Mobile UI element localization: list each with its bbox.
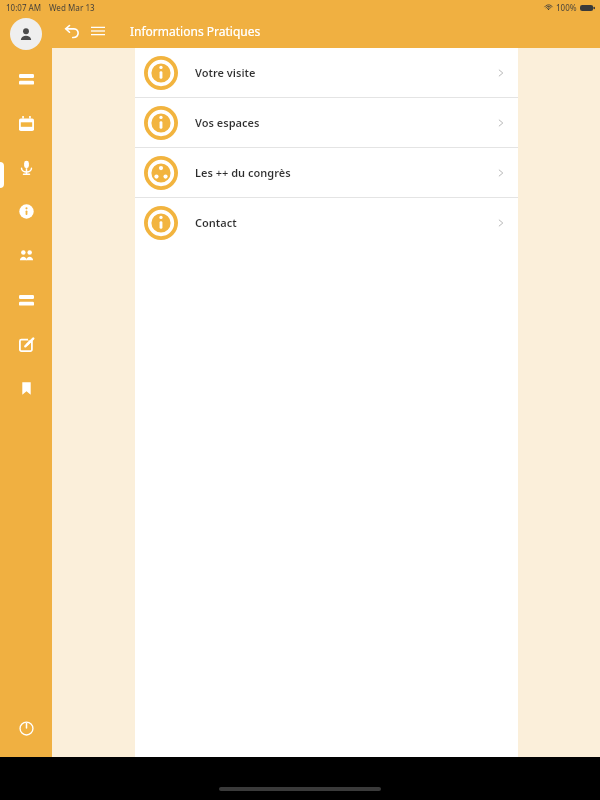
- staticText: Vos espaces: [195, 115, 260, 130]
- button[interactable]: Contact: [135, 198, 518, 247]
- staticText: Wed Mar 13: [49, 2, 95, 13]
- button[interactable]: Notes: [12, 330, 40, 358]
- button[interactable]: Logout: [11, 713, 41, 743]
- button[interactable]: List: [12, 65, 40, 93]
- button[interactable]: Votre visite: [135, 48, 518, 97]
- button[interactable]: Vos espaces: [135, 98, 518, 147]
- staticText: Les ++ du congrès: [195, 165, 291, 180]
- button[interactable]: Menu: [86, 19, 110, 43]
- button[interactable]: Calendar: [12, 109, 40, 137]
- button[interactable]: Back: [60, 19, 84, 43]
- button[interactable]: Agenda: [12, 286, 40, 314]
- button[interactable]: Les ++ du congrès: [135, 148, 518, 197]
- staticText: Contact: [195, 215, 237, 230]
- staticText: 100%: [556, 2, 577, 13]
- staticText: Votre visite: [195, 65, 256, 80]
- button[interactable]: People: [12, 241, 40, 269]
- button[interactable]: Profile: [10, 18, 42, 50]
- button[interactable]: Information: [12, 197, 40, 225]
- staticText: Informations Pratiques: [130, 23, 261, 39]
- button[interactable]: Bookmarks: [12, 374, 40, 402]
- button[interactable]: Microphone: [12, 153, 40, 181]
- staticText: 10:07 AM: [6, 2, 42, 13]
